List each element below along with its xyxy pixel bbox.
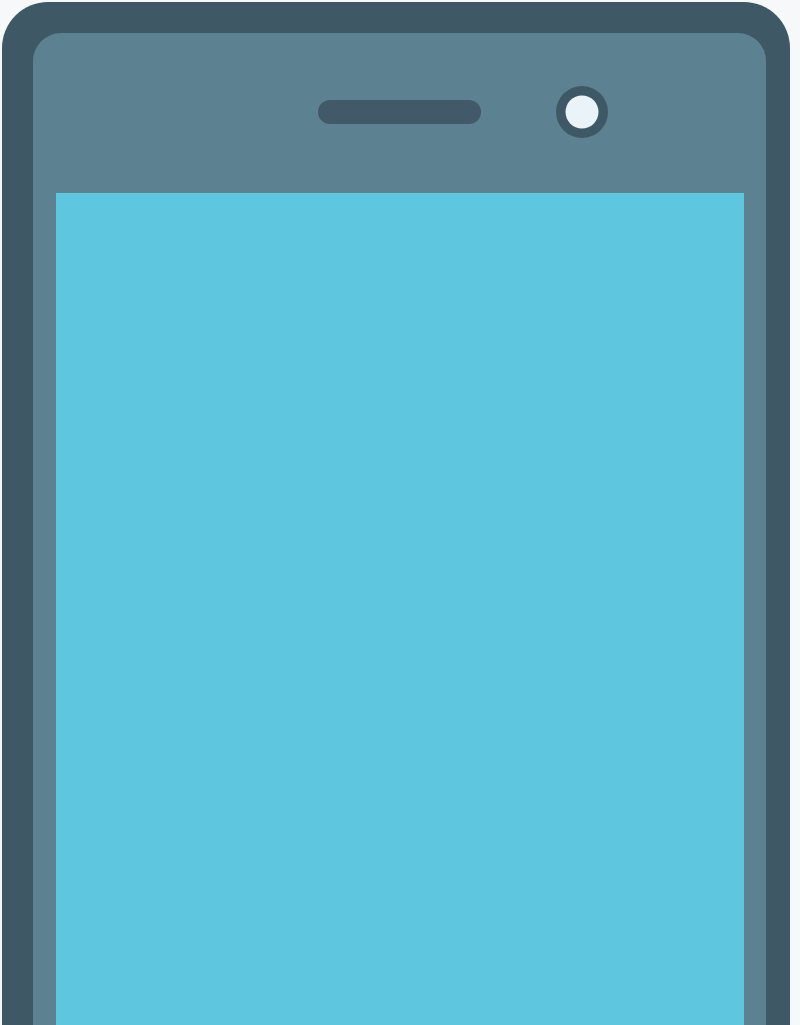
button[interactable]: Smartphone illustration: [0, 0, 800, 1025]
